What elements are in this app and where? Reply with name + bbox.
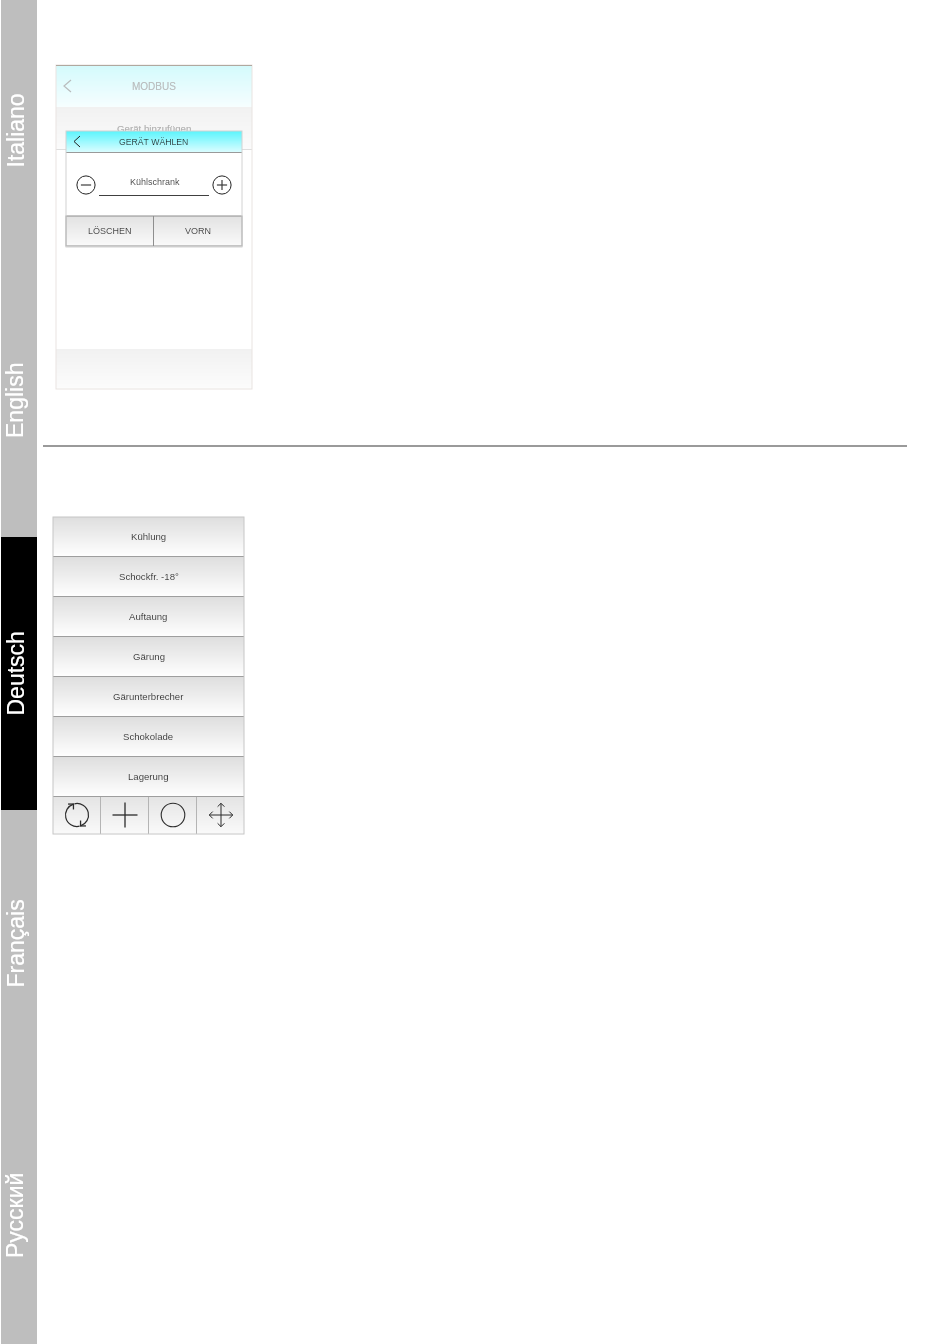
staticText: MODBUS — [132, 81, 176, 92]
button[interactable]: Gärunterbrecher — [53, 677, 244, 717]
staticText: GERÄT WÄHLEN — [119, 137, 189, 147]
button[interactable]: Schockfr. -18° — [53, 557, 244, 597]
staticText: Auftaung — [129, 611, 168, 622]
button[interactable]: Gerät hinzufügen — [56, 107, 252, 149]
button[interactable]: GERÄT WÄHLEN — [66, 131, 242, 152]
staticText: English — [2, 362, 28, 438]
staticText: Gärung — [133, 651, 165, 662]
staticText: Kühlung — [131, 531, 167, 542]
button[interactable]: Decrease — [76, 175, 96, 195]
button[interactable]: Back — [56, 65, 78, 107]
button[interactable]: VORN — [154, 216, 242, 246]
button[interactable]: Русский — [1, 1145, 37, 1285]
button[interactable]: Add — [101, 797, 149, 834]
staticText: Русский — [2, 1172, 28, 1258]
button[interactable]: Italiano — [1, 60, 37, 200]
button[interactable]: Auftaung — [53, 597, 244, 637]
button[interactable]: Increase — [212, 175, 232, 195]
button[interactable]: Lagerung — [53, 757, 244, 797]
button[interactable]: Gärung — [53, 637, 244, 677]
staticText: Schokolade — [123, 731, 174, 742]
button[interactable]: MODBUS — [56, 65, 252, 107]
button[interactable]: LÖSCHEN — [66, 216, 153, 246]
button[interactable]: Select — [149, 797, 197, 834]
button[interactable]: Back — [66, 131, 88, 152]
staticText: Deutsch — [2, 630, 28, 715]
staticText: Gärunterbrecher — [113, 691, 184, 702]
staticText: Italiano — [2, 92, 28, 167]
button[interactable]: Move — [197, 797, 244, 834]
staticText: Kühlschrank — [130, 177, 180, 187]
button[interactable]: Kühlung — [53, 517, 244, 557]
staticText: Lagerung — [128, 771, 169, 782]
staticText: VORN — [185, 226, 212, 236]
button[interactable]: Français — [1, 873, 37, 1013]
staticText: Gerät hinzufügen — [117, 123, 192, 134]
button[interactable]: Deutsch — [1, 603, 37, 743]
button[interactable]: English — [1, 330, 37, 470]
button[interactable]: Refresh — [53, 797, 101, 834]
staticText: Français — [2, 898, 28, 987]
button[interactable]: Schokolade — [53, 717, 244, 757]
staticText: LÖSCHEN — [88, 226, 132, 236]
staticText: Schockfr. -18° — [119, 571, 179, 582]
